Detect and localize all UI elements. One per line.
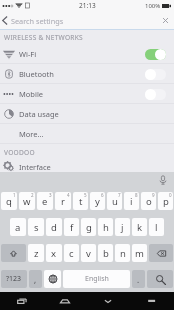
staticText: Interface xyxy=(19,162,51,172)
button[interactable]: Bluetooth xyxy=(0,64,174,84)
staticText: s xyxy=(34,221,39,234)
staticText: 9 xyxy=(152,192,155,198)
button[interactable]: Home xyxy=(43,292,86,310)
staticText: m xyxy=(135,247,144,260)
staticText: Wi-Fi xyxy=(19,49,37,59)
button[interactable]: Off xyxy=(145,89,166,100)
button[interactable]: k xyxy=(132,218,147,236)
staticText: 100% xyxy=(145,2,161,10)
button[interactable]: On xyxy=(145,49,166,60)
staticText: 6 xyxy=(101,192,104,198)
button[interactable]: Menu xyxy=(130,292,174,310)
button[interactable]: Shift xyxy=(1,244,26,262)
button[interactable]: t xyxy=(73,192,88,210)
button[interactable]: Search xyxy=(147,270,173,288)
button[interactable]: , xyxy=(29,270,42,288)
button[interactable]: Back xyxy=(0,11,9,30)
button[interactable]: c xyxy=(64,244,79,262)
staticText: k xyxy=(137,221,143,234)
staticText: n xyxy=(120,247,126,260)
staticText: f xyxy=(70,221,74,234)
button[interactable]: q xyxy=(1,192,17,210)
button[interactable]: Voice input xyxy=(156,173,170,187)
button[interactable]: n xyxy=(115,244,130,262)
button[interactable]: o xyxy=(141,192,156,210)
staticText: Mobile xyxy=(19,89,44,99)
button[interactable]: Clear search xyxy=(156,11,174,30)
staticText: Bluetooth xyxy=(19,69,54,79)
staticText: , xyxy=(34,274,37,285)
staticText: 8 xyxy=(135,192,138,198)
button[interactable]: a xyxy=(10,218,26,236)
button[interactable]: y xyxy=(90,192,105,210)
button[interactable]: s xyxy=(28,218,44,236)
staticText: w xyxy=(23,195,31,208)
button[interactable]: p xyxy=(158,192,173,210)
button[interactable]: v xyxy=(81,244,96,262)
button[interactable]: r xyxy=(55,192,71,210)
button[interactable]: u xyxy=(107,192,122,210)
staticText: 1 xyxy=(13,192,16,198)
staticText: Data usage xyxy=(19,109,59,119)
staticText: More... xyxy=(19,129,44,139)
staticText: c xyxy=(69,247,74,260)
staticText: l xyxy=(155,221,158,234)
button[interactable]: Interface xyxy=(0,161,174,172)
staticText: e xyxy=(42,195,48,208)
staticText: 3 xyxy=(49,192,52,198)
button[interactable]: z xyxy=(28,244,44,262)
button[interactable]: w xyxy=(19,192,35,210)
button[interactable]: Off xyxy=(145,69,166,80)
staticText: d xyxy=(51,221,57,234)
staticText: u xyxy=(112,195,118,208)
staticText: x xyxy=(51,247,57,260)
button[interactable]: d xyxy=(46,218,62,236)
button[interactable]: h xyxy=(98,218,113,236)
staticText: y xyxy=(95,195,100,208)
staticText: a xyxy=(15,221,21,234)
staticText: 5 xyxy=(84,192,87,198)
staticText: b xyxy=(103,247,109,260)
staticText: 21:13 xyxy=(79,1,96,10)
staticText: ?123 xyxy=(6,274,22,284)
staticText: t xyxy=(79,195,83,208)
staticText: z xyxy=(34,247,39,260)
button[interactable]: m xyxy=(132,244,147,262)
button[interactable]: Recent apps xyxy=(0,292,43,310)
staticText: p xyxy=(163,195,169,208)
button[interactable]: b xyxy=(98,244,113,262)
button[interactable]: . xyxy=(132,270,145,288)
staticText: . xyxy=(137,274,140,285)
staticText: j xyxy=(121,221,124,234)
button[interactable]: g xyxy=(81,218,96,236)
button[interactable]: Hide keyboard xyxy=(86,292,130,310)
staticText: 2 xyxy=(31,192,34,198)
staticText: r xyxy=(61,195,65,208)
button[interactable]: x xyxy=(46,244,62,262)
staticText: g xyxy=(86,221,92,234)
staticText: h xyxy=(103,221,109,234)
button[interactable]: e xyxy=(37,192,53,210)
button[interactable]: f xyxy=(64,218,79,236)
button[interactable]: More... xyxy=(0,124,174,144)
staticText: Search settings xyxy=(11,16,156,26)
button[interactable]: Change language xyxy=(44,270,61,288)
button[interactable]: Data usage xyxy=(0,104,174,124)
button[interactable]: English xyxy=(63,270,130,288)
button[interactable]: ?123 xyxy=(1,270,27,288)
staticText: o xyxy=(146,195,152,208)
button[interactable]: Mobile xyxy=(0,84,174,104)
button[interactable]: l xyxy=(149,218,164,236)
staticText: 7 xyxy=(118,192,121,198)
button[interactable]: j xyxy=(115,218,130,236)
staticText: i xyxy=(130,195,133,208)
staticText: VOODOO xyxy=(4,148,35,157)
button[interactable]: Wi-Fi xyxy=(0,44,174,64)
staticText: 0 xyxy=(169,192,172,198)
button[interactable]: i xyxy=(124,192,139,210)
staticText: q xyxy=(6,195,12,208)
button[interactable]: Backspace xyxy=(149,244,173,262)
staticText: WIRELESS & NETWORKS xyxy=(4,33,83,42)
staticText: v xyxy=(86,247,91,260)
staticText: English xyxy=(85,274,109,284)
